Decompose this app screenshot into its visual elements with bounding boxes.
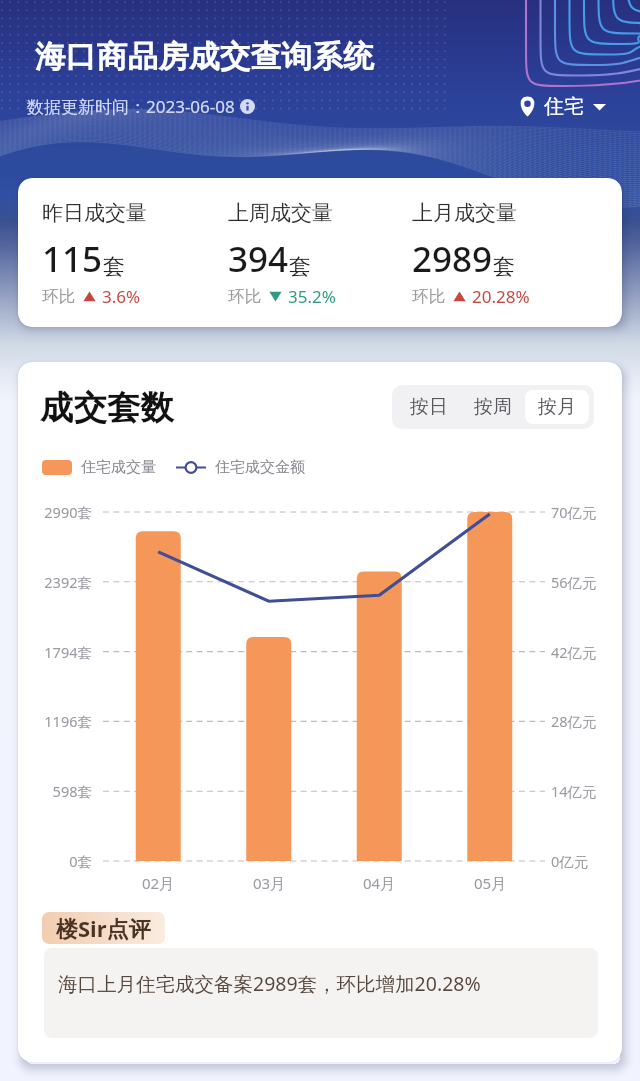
staticText: 套 xyxy=(493,253,515,281)
button[interactable]: 按日 xyxy=(397,390,461,424)
staticText: 1794套 xyxy=(18,642,92,662)
staticText: 环比 xyxy=(228,286,261,307)
button[interactable]: 上周成交量 xyxy=(228,200,412,308)
staticText: 按日 xyxy=(410,395,448,419)
staticText: 03月 xyxy=(229,873,309,893)
staticText: 套 xyxy=(103,253,125,281)
staticText: 02月 xyxy=(118,873,198,893)
staticText: 数据更新时间：2023-06-08 xyxy=(27,95,235,118)
staticText: 上月成交量 xyxy=(412,200,517,226)
staticText: 上周成交量 xyxy=(228,200,333,226)
staticText: 海口上月住宅成交备案2989套，环比增加20.28% xyxy=(58,970,481,997)
staticText: 35.2% xyxy=(288,285,336,308)
staticText: 598套 xyxy=(18,781,92,801)
staticText: 2989 xyxy=(412,235,493,283)
staticText: 42亿元 xyxy=(551,642,597,662)
staticText: 05月 xyxy=(450,873,530,893)
staticText: 海口商品房成交查询系统 xyxy=(35,38,374,76)
staticText: 环比 xyxy=(412,286,445,307)
staticText: 0套 xyxy=(18,851,92,871)
staticText: 成交套数 xyxy=(40,387,174,429)
staticText: 3.6% xyxy=(102,285,141,308)
staticText: 2392套 xyxy=(18,572,92,592)
staticText: 套 xyxy=(289,253,311,281)
staticText: 56亿元 xyxy=(551,572,597,592)
staticText: 1196套 xyxy=(18,711,92,731)
staticText: 70亿元 xyxy=(551,502,597,522)
button[interactable]: 按周 xyxy=(461,390,525,424)
staticText: 按周 xyxy=(474,395,512,419)
staticText: 20.28% xyxy=(472,285,530,308)
button[interactable]: 上月成交量 xyxy=(412,200,602,308)
staticText: 2990套 xyxy=(18,502,92,522)
button[interactable]: 按月 xyxy=(525,390,589,424)
staticText: 14亿元 xyxy=(551,781,597,801)
staticText: 楼Sir点评 xyxy=(56,913,151,943)
staticText: 昨日成交量 xyxy=(42,200,147,226)
button[interactable]: 住宅 xyxy=(515,91,609,122)
button[interactable]: 数据说明 Info xyxy=(240,99,255,114)
staticText: 住宅 xyxy=(544,94,584,119)
staticText: 28亿元 xyxy=(551,711,597,731)
staticText: 环比 xyxy=(42,286,75,307)
staticText: 0亿元 xyxy=(551,851,589,871)
staticText: 115 xyxy=(42,235,103,283)
staticText: 住宅成交金额 xyxy=(215,458,305,477)
staticText: 04月 xyxy=(339,873,419,893)
staticText: 394 xyxy=(228,235,289,283)
staticText: 住宅成交量 xyxy=(81,458,156,477)
button[interactable]: 海口上月住宅成交备案2989套，环比增加20.28% xyxy=(44,948,598,1038)
button[interactable]: 昨日成交量 xyxy=(42,200,228,308)
staticText: 按月 xyxy=(538,395,576,419)
